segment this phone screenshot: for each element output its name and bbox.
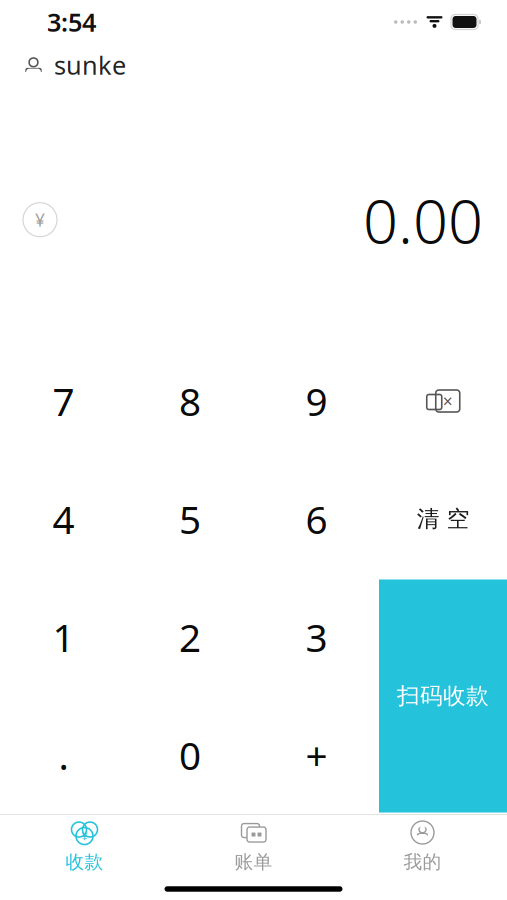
staticText: 5 [179, 493, 201, 545]
staticText: 7 [52, 375, 74, 427]
staticText: 0 [179, 729, 201, 781]
staticText: 收款 [65, 850, 103, 873]
button[interactable]: . [0, 696, 127, 814]
button[interactable]: 6 [253, 460, 380, 578]
staticText: 9 [305, 375, 327, 427]
button[interactable]: 扫码收款 [379, 579, 507, 812]
button[interactable]: 我的 [338, 815, 507, 878]
staticText: ¥ [81, 829, 87, 843]
staticText: 3 [305, 611, 327, 663]
staticText: 3:54 [47, 5, 96, 39]
staticText: . [58, 729, 68, 781]
button[interactable]: 9 [253, 342, 380, 460]
staticText: 2 [179, 611, 201, 663]
button[interactable]: 8 [127, 342, 253, 460]
button[interactable]: 账单 [169, 815, 338, 878]
button[interactable]: 清 空 [380, 460, 507, 578]
staticText: 4 [52, 493, 74, 545]
button[interactable]: + [253, 696, 380, 814]
staticText: 8 [179, 375, 201, 427]
button[interactable]: 2 [127, 578, 253, 696]
staticText: 清 空 [417, 505, 470, 533]
button[interactable]: ¥ [0, 815, 169, 878]
staticText: 1 [52, 611, 74, 663]
button[interactable]: 5 [127, 460, 253, 578]
staticText: ¥ [35, 208, 45, 231]
button[interactable]: 4 [0, 460, 127, 578]
button[interactable]: Backspace [380, 342, 507, 460]
staticText: × [443, 389, 453, 412]
button[interactable]: 7 [0, 342, 127, 460]
staticText: 账单 [234, 850, 272, 873]
staticText: 扫码收款 [397, 682, 489, 710]
staticText: 0.00 [363, 179, 483, 260]
staticText: sunke [54, 48, 126, 82]
staticText: 我的 [403, 850, 441, 873]
staticText: 6 [305, 493, 327, 545]
button[interactable]: 3 [253, 578, 380, 696]
button[interactable]: 0 [127, 696, 253, 814]
staticText: + [305, 729, 327, 781]
button[interactable]: 1 [0, 578, 127, 696]
